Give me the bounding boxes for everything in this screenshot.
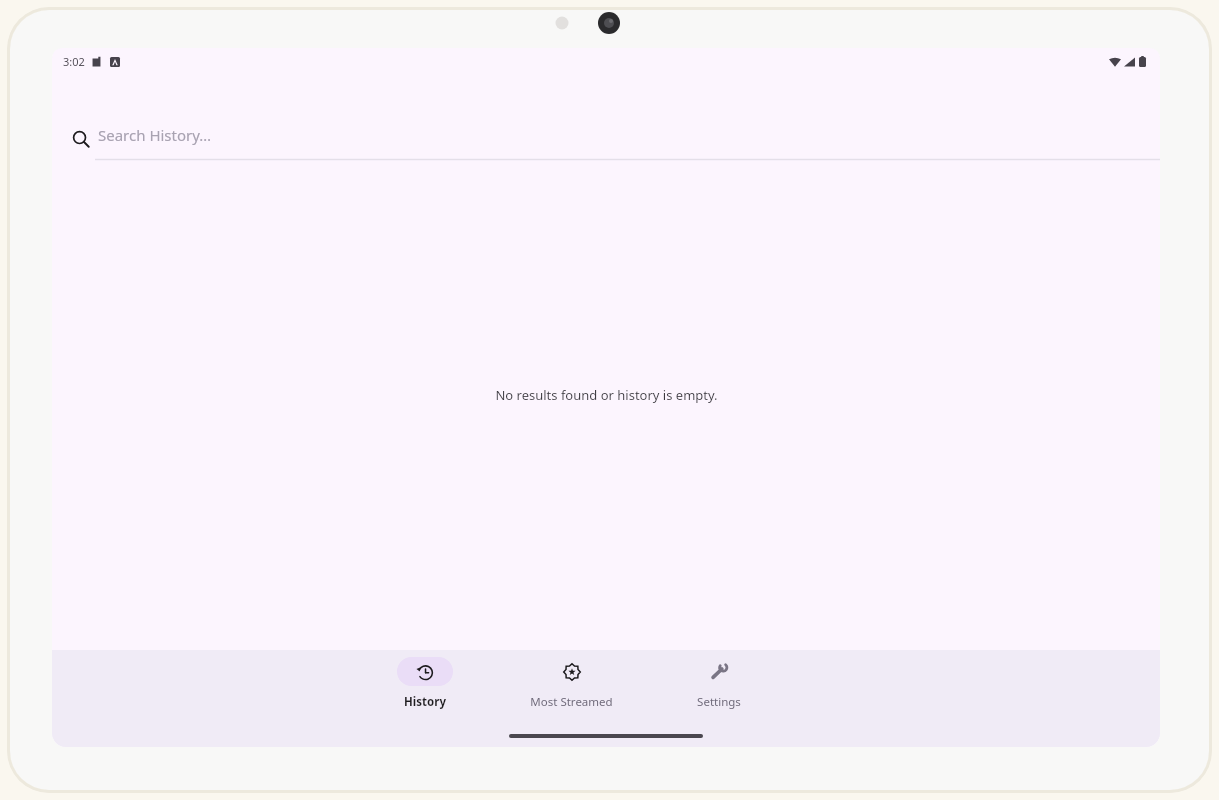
staticText: History [404,694,446,710]
button[interactable]: Search [68,126,94,152]
button[interactable]: Search History… [95,118,1160,160]
staticText: Most Streamed [530,694,613,710]
button[interactable]: Settings [645,657,792,710]
staticText: Settings [697,694,741,710]
staticText: Search History… [98,125,212,145]
staticText: No results found or history is empty. [495,386,718,404]
staticText: 3:02 [63,54,85,69]
button[interactable]: History [351,657,498,710]
button[interactable]: Most Streamed [498,657,645,710]
